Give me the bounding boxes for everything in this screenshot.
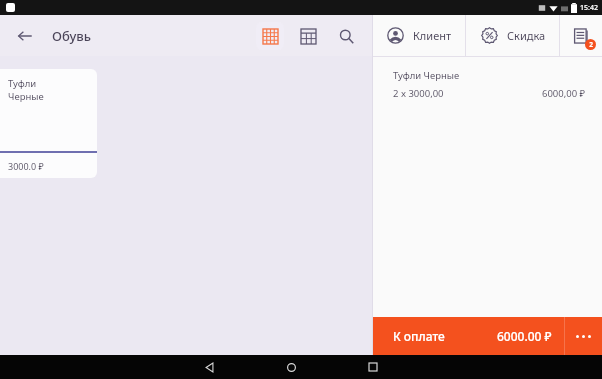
button[interactable]: Туфли Черные <box>373 57 602 110</box>
button[interactable]: Table view <box>294 22 322 50</box>
button[interactable]: Home <box>279 355 303 379</box>
staticText: Черные <box>8 90 44 103</box>
button[interactable]: Search <box>332 22 360 50</box>
button[interactable]: Receipts, 2 pending <box>560 15 602 56</box>
button[interactable]: More options <box>565 317 602 355</box>
button[interactable]: Recent apps <box>361 355 385 379</box>
button[interactable]: Скидка <box>466 15 559 56</box>
button[interactable]: Back <box>197 355 221 379</box>
staticText: 6000,00 ₽ <box>542 87 586 100</box>
staticText: Обувь <box>52 27 92 45</box>
staticText: Туфли <box>8 77 37 90</box>
staticText: 3000.0 ₽ <box>8 160 44 172</box>
staticText: 2 <box>589 40 593 49</box>
staticText: К оплате <box>393 328 445 344</box>
staticText: Клиент <box>413 28 452 43</box>
button[interactable]: Клиент <box>373 15 465 56</box>
button[interactable]: Grid view <box>256 22 284 50</box>
staticText: 15:42 <box>580 3 598 13</box>
button[interactable]: Туфли <box>0 69 97 178</box>
staticText: Скидка <box>507 28 546 43</box>
button[interactable]: Back <box>12 23 38 49</box>
button[interactable]: К оплате <box>373 317 564 355</box>
staticText: 2 x 3000,00 <box>393 87 444 100</box>
staticText: Туфли Черные <box>393 69 460 82</box>
staticText: 6000.00 ₽ <box>497 328 552 344</box>
